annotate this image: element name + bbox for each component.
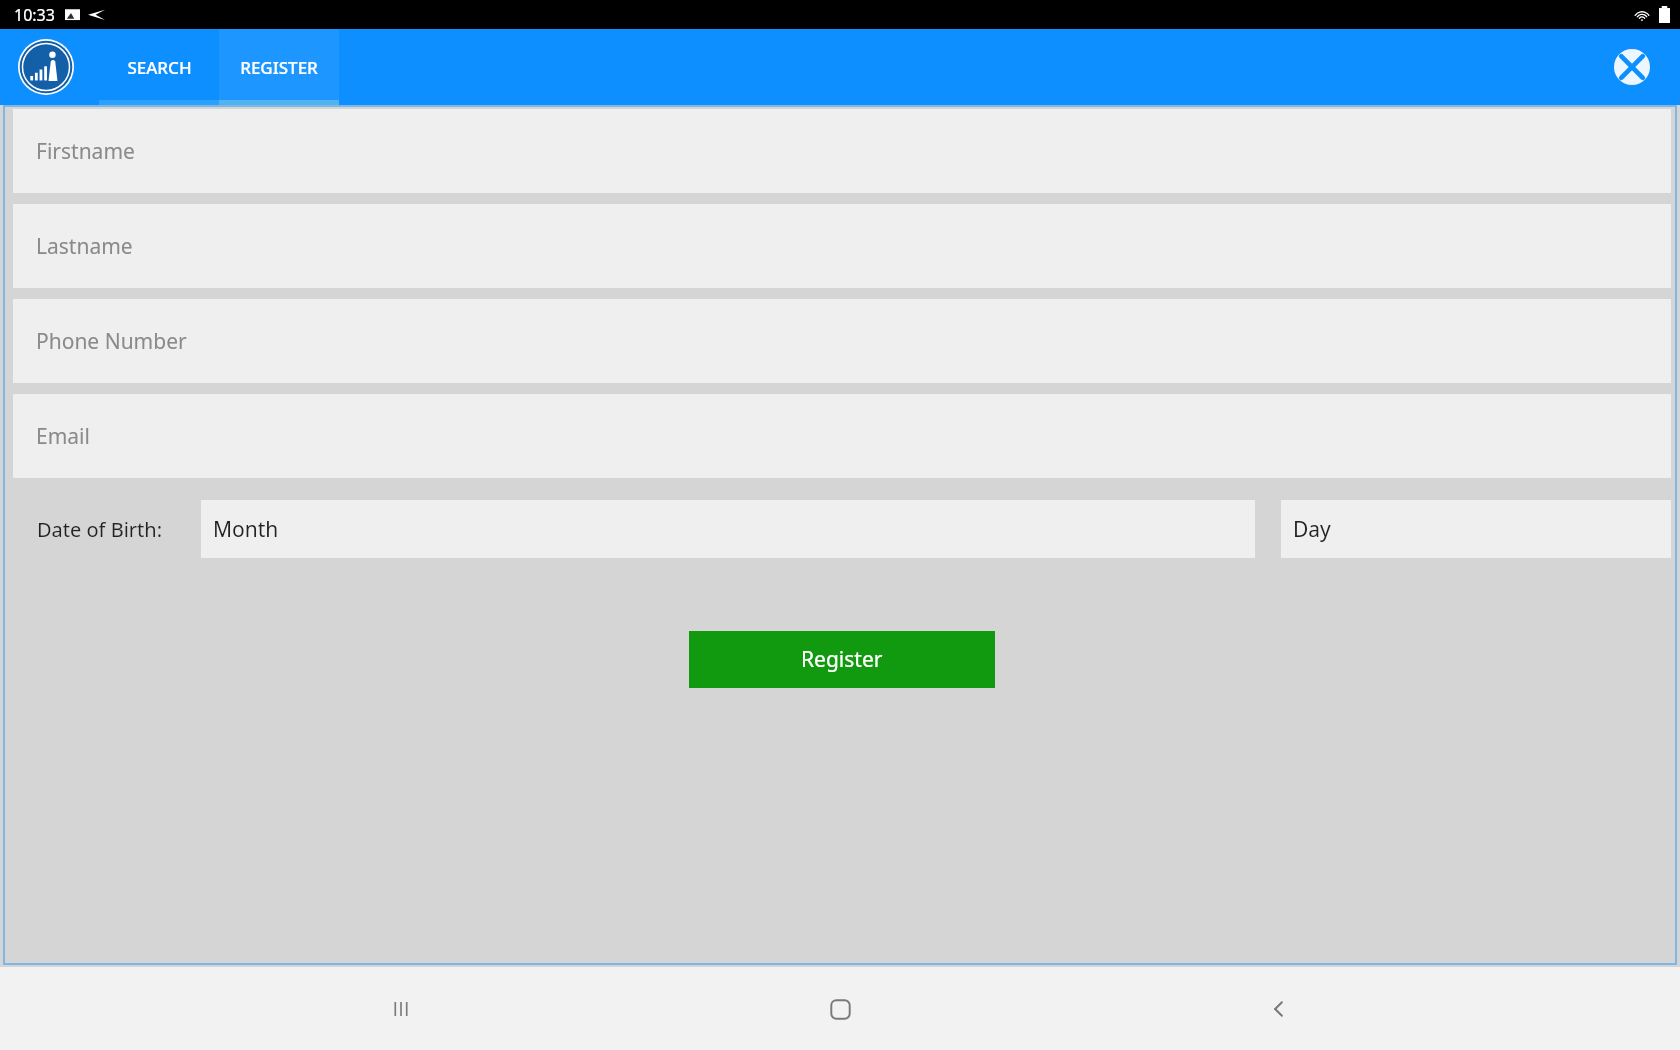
- button[interactable]: Register: [689, 631, 995, 688]
- button[interactable]: Month: [201, 500, 1255, 558]
- button[interactable]: Email: [13, 394, 1671, 478]
- staticText: Month: [213, 515, 279, 544]
- button[interactable]: Home: [802, 971, 878, 1047]
- staticText: Lastname: [36, 232, 133, 261]
- staticText: Firstname: [36, 137, 135, 166]
- staticText: 10:33: [14, 4, 55, 26]
- staticText: SEARCH: [127, 56, 192, 79]
- staticText: Phone Number: [36, 327, 187, 356]
- button[interactable]: Close: [1612, 47, 1652, 87]
- button[interactable]: Firstname: [13, 109, 1671, 193]
- button[interactable]: SEARCH: [99, 29, 219, 105]
- button[interactable]: Phone Number: [13, 299, 1671, 383]
- button[interactable]: REGISTER: [219, 29, 339, 105]
- button[interactable]: Day: [1281, 500, 1671, 558]
- button[interactable]: Lastname: [13, 204, 1671, 288]
- button[interactable]: Recent apps: [363, 971, 439, 1047]
- staticText: Email: [36, 422, 90, 451]
- staticText: Register: [801, 645, 883, 674]
- button[interactable]: Back: [1241, 971, 1317, 1047]
- staticText: Day: [1293, 515, 1331, 544]
- staticText: REGISTER: [240, 56, 318, 79]
- staticText: Date of Birth:: [37, 516, 163, 543]
